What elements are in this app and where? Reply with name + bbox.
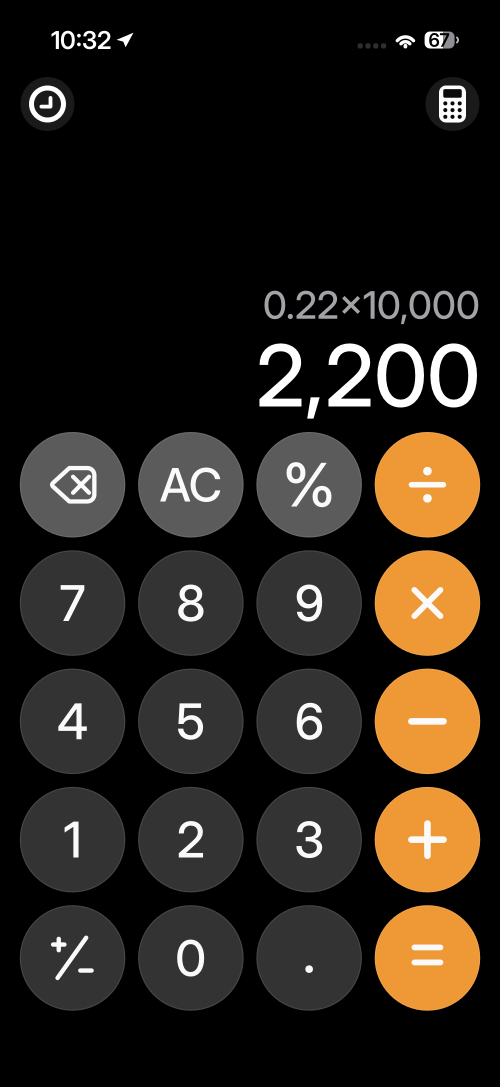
button[interactable]: 9 — [256, 550, 362, 656]
staticText: 67 — [429, 29, 450, 51]
staticText: 2,200 — [256, 324, 480, 427]
staticText: 7 — [60, 573, 86, 633]
staticText: % — [283, 448, 336, 521]
button[interactable]: 7 — [20, 550, 125, 656]
button[interactable]: 3 — [256, 787, 362, 892]
button[interactable]: 5 — [138, 669, 244, 774]
button[interactable]: Subtract — [375, 669, 480, 774]
button[interactable]: 8 — [138, 550, 244, 656]
button[interactable]: Multiply — [375, 550, 480, 656]
button[interactable]: Calculator — [425, 77, 479, 131]
staticText: AC — [160, 457, 222, 513]
button[interactable]: Divide — [375, 432, 480, 537]
button[interactable]: Percent — [256, 432, 362, 537]
button[interactable]: 0 — [138, 905, 244, 1011]
staticText: 0.22×10,000 — [263, 282, 480, 328]
staticText: 0 — [175, 928, 206, 988]
button[interactable]: 1 — [20, 787, 125, 892]
staticText: 2 — [177, 810, 205, 869]
button[interactable]: Plus minus — [20, 905, 125, 1011]
button[interactable]: 6 — [256, 669, 362, 774]
button[interactable]: All clear — [138, 432, 244, 537]
button[interactable]: Equals — [375, 905, 480, 1011]
button[interactable]: Decimal point — [256, 905, 362, 1011]
staticText: 5 — [176, 691, 205, 751]
staticText: 4 — [57, 691, 88, 751]
button[interactable]: Add — [375, 787, 480, 892]
button[interactable]: History — [20, 77, 74, 131]
staticText: 6 — [295, 691, 324, 751]
button[interactable]: Delete — [20, 432, 125, 537]
button[interactable]: 4 — [20, 669, 125, 774]
staticText: 1 — [64, 810, 82, 869]
staticText: 3 — [294, 810, 324, 869]
staticText: 8 — [176, 573, 205, 633]
staticText: 10:32 — [51, 25, 111, 55]
staticText: 9 — [295, 573, 324, 633]
button[interactable]: 2 — [138, 787, 244, 892]
